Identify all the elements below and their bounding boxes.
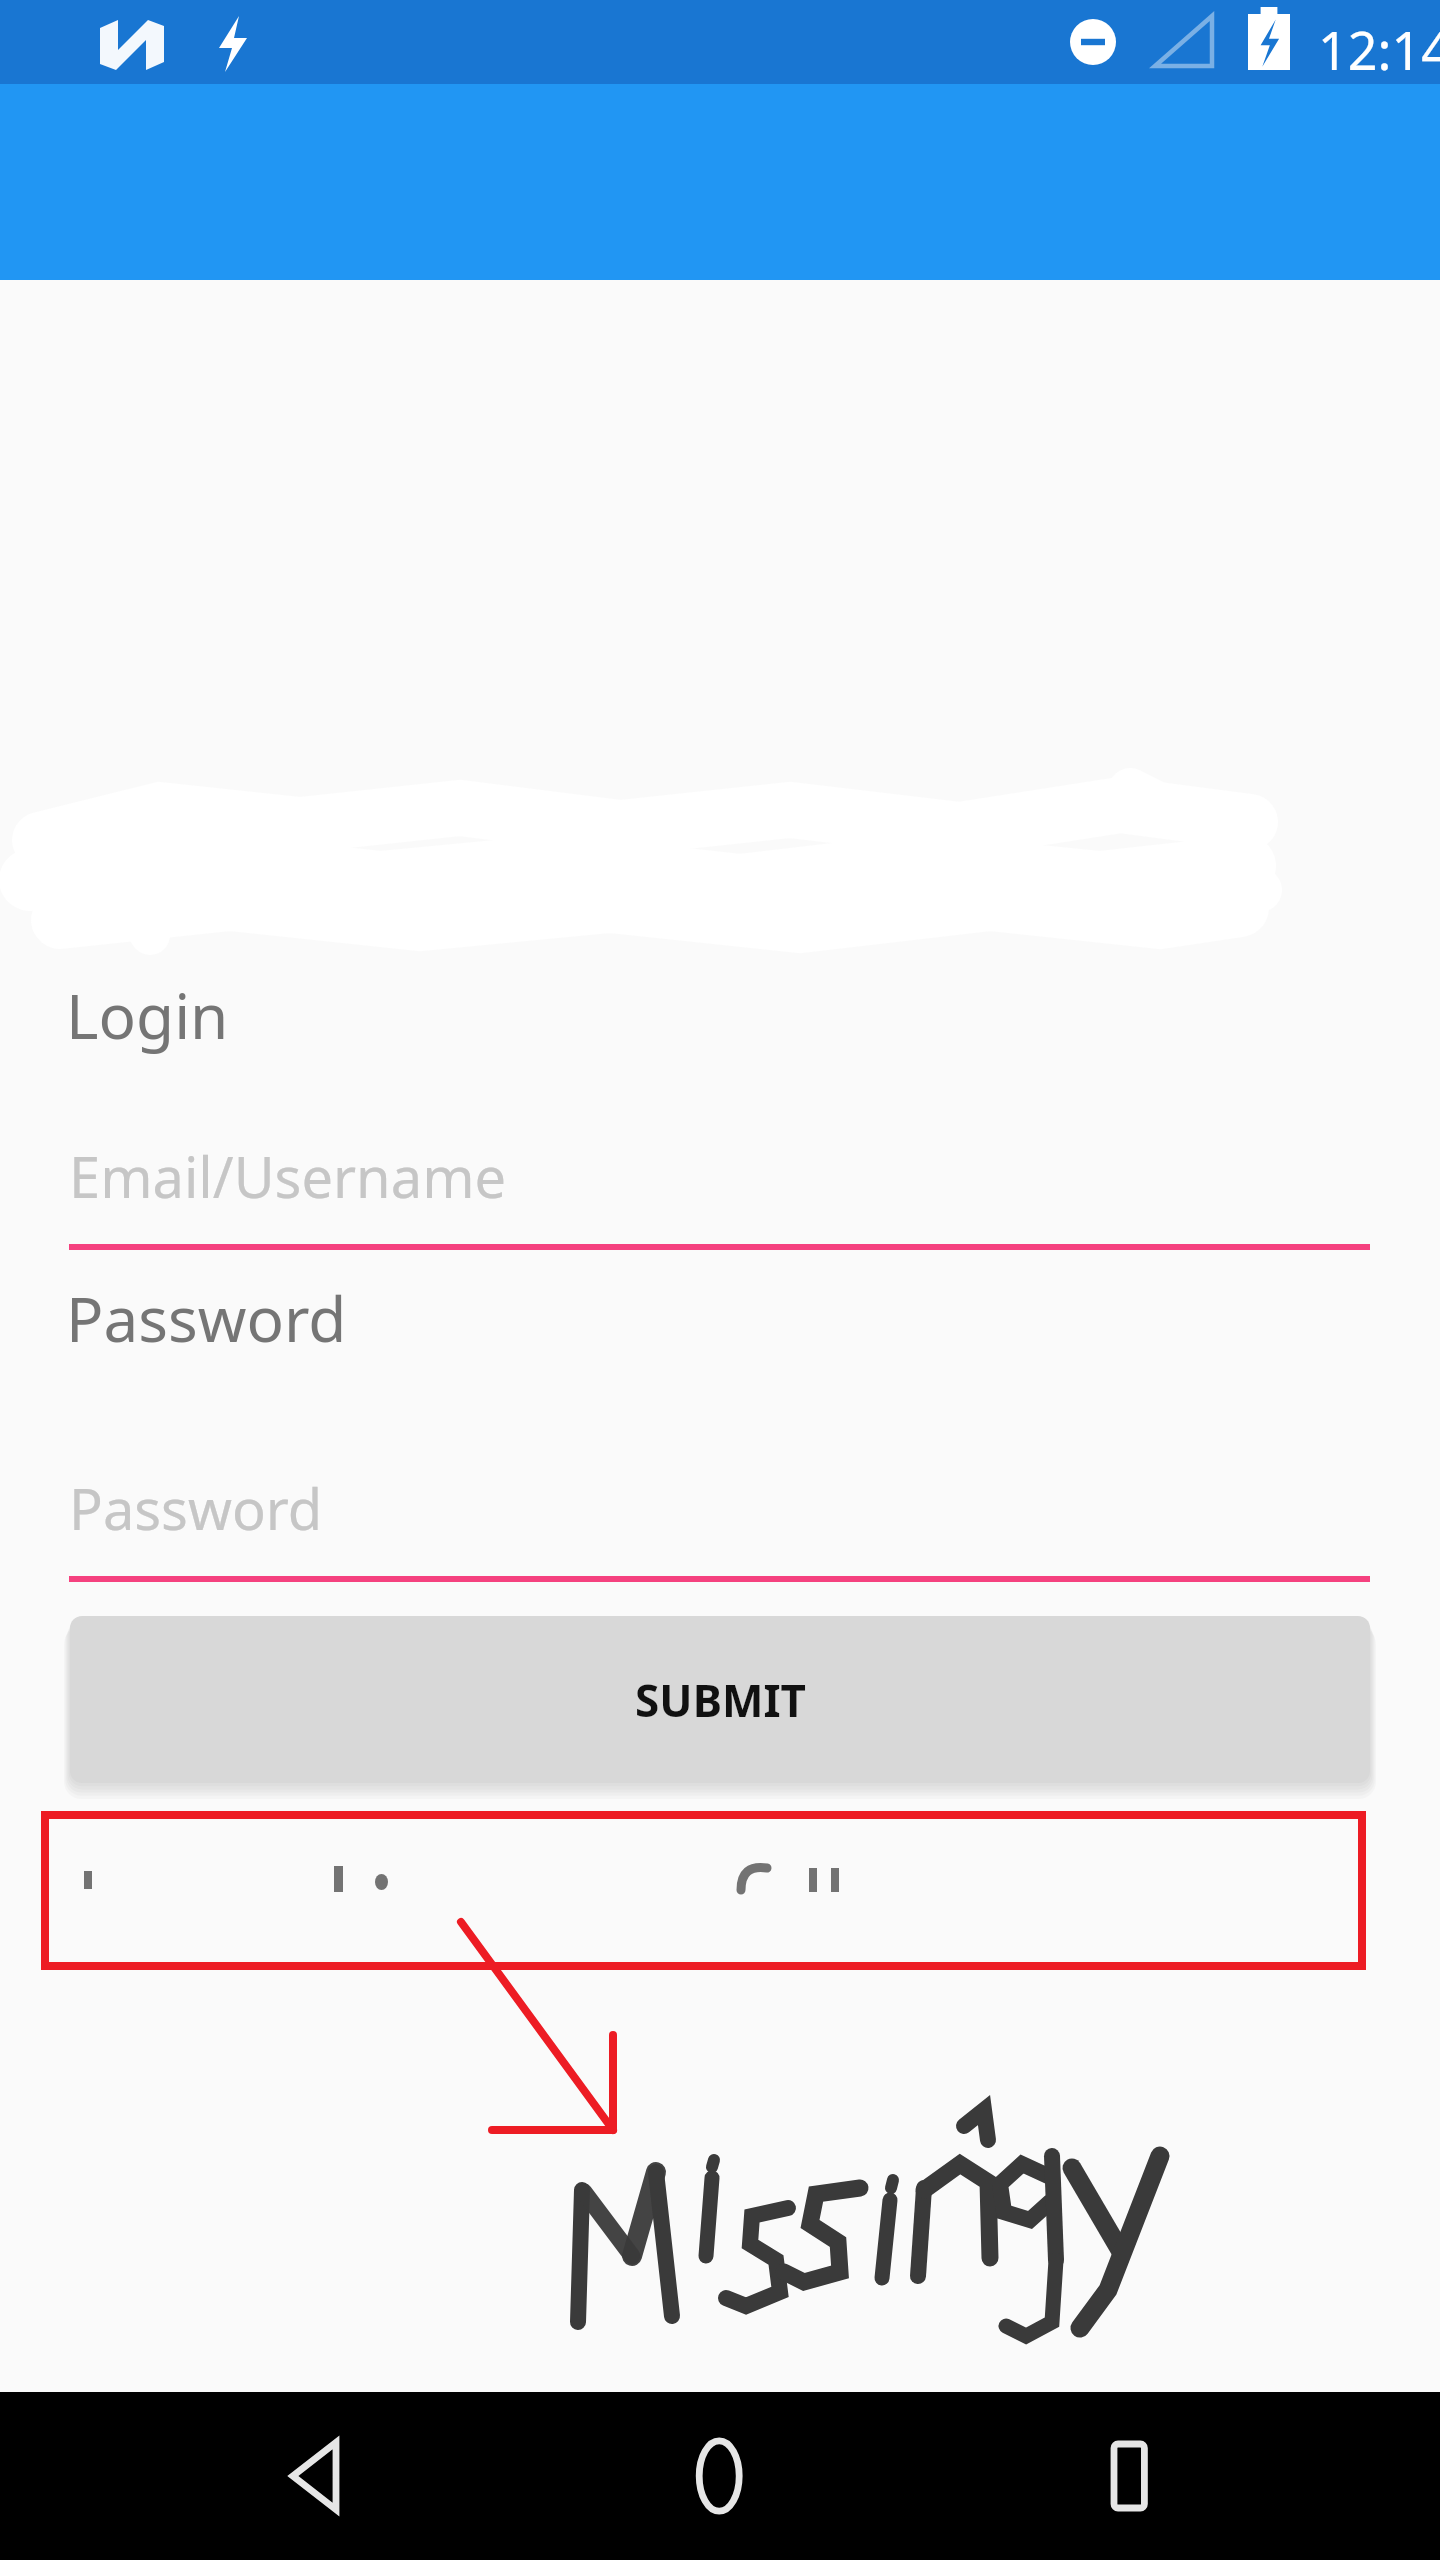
- button[interactable]: Password: [66, 1268, 566, 1368]
- staticText: 12:14: [1318, 14, 1440, 85]
- staticText: SUBMIT: [635, 1670, 806, 1730]
- button[interactable]: Email/Username: [69, 1120, 1370, 1255]
- button[interactable]: Login: [66, 965, 466, 1065]
- staticText: Password: [69, 1470, 323, 1546]
- staticText: Password: [66, 1276, 347, 1360]
- button[interactable]: Home: [630, 2392, 810, 2560]
- staticText: Email/Username: [69, 1138, 507, 1214]
- staticText: Login: [66, 973, 229, 1057]
- button[interactable]: Recent apps: [1040, 2392, 1220, 2560]
- button[interactable]: Back: [230, 2392, 410, 2560]
- button[interactable]: [69, 1846, 969, 1916]
- button[interactable]: SUBMIT: [70, 1616, 1370, 1783]
- button[interactable]: Password: [69, 1452, 1370, 1587]
